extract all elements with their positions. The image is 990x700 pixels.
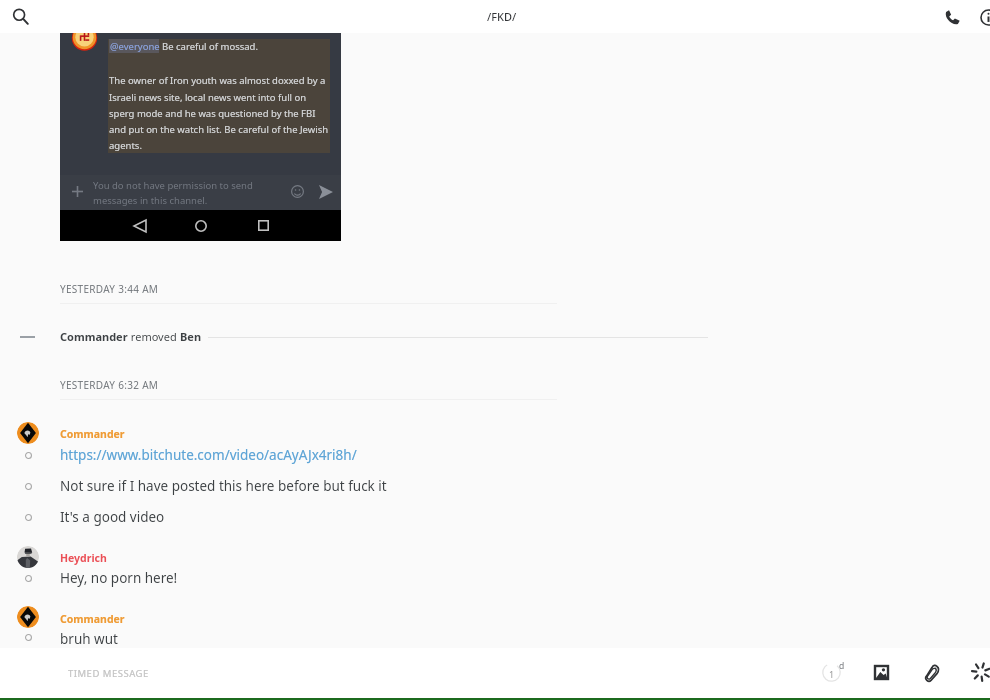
staticText: Commander [60, 612, 125, 626]
button[interactable]: Commander [0, 424, 990, 460]
button[interactable]: Search [6, 2, 34, 30]
button[interactable]: Not sure if I have posted this here befo… [0, 474, 990, 502]
staticText: Be careful of mossad. [162, 40, 258, 53]
staticText: Commander [60, 427, 125, 441]
button[interactable]: Channel info [973, 2, 990, 32]
staticText: You do not have permission to send [93, 179, 253, 192]
staticText: bruh wut [60, 630, 118, 648]
staticText: Not sure if I have posted this here befo… [60, 477, 387, 495]
staticText: https://www.bitchute.com/video/acAyAJx4r… [60, 446, 357, 464]
staticText: 1 [829, 668, 835, 680]
button[interactable]: Call [937, 2, 967, 32]
staticText: TIMED MESSAGE [68, 667, 149, 680]
button[interactable]: Heydrich [0, 548, 990, 584]
button[interactable]: Commander [0, 609, 990, 645]
button[interactable]: It's a good video [0, 505, 990, 533]
staticText: sperg mode and he was questioned by the … [109, 107, 316, 120]
staticText: Hey, no porn here! [60, 569, 178, 587]
staticText: @everyone [110, 40, 160, 53]
staticText: The owner of Iron youth was almost doxxe… [109, 74, 326, 87]
staticText: Ben [180, 329, 202, 344]
button[interactable]: Effects [956, 650, 990, 694]
staticText: /FKD/ [487, 9, 517, 24]
staticText: Commander [60, 329, 128, 344]
staticText: It's a good video [60, 508, 165, 526]
staticText: messages in this channel. [93, 194, 208, 207]
button[interactable]: Message timer [807, 650, 856, 694]
staticText: Israeli news site, local news went into … [109, 91, 307, 104]
button[interactable]: Send image [856, 650, 906, 694]
staticText: YESTERDAY 6:32 AM [60, 378, 159, 392]
button[interactable]: Attach file [906, 650, 956, 694]
staticText: YESTERDAY 3:44 AM [60, 282, 159, 296]
staticText: and put on the watch list. Be careful of… [109, 123, 329, 136]
staticText: Heydrich [60, 551, 107, 565]
button[interactable]: TIMED MESSAGE [0, 650, 800, 694]
staticText: removed [128, 329, 180, 344]
staticText: d [839, 660, 845, 672]
staticText: agents. [109, 139, 142, 152]
